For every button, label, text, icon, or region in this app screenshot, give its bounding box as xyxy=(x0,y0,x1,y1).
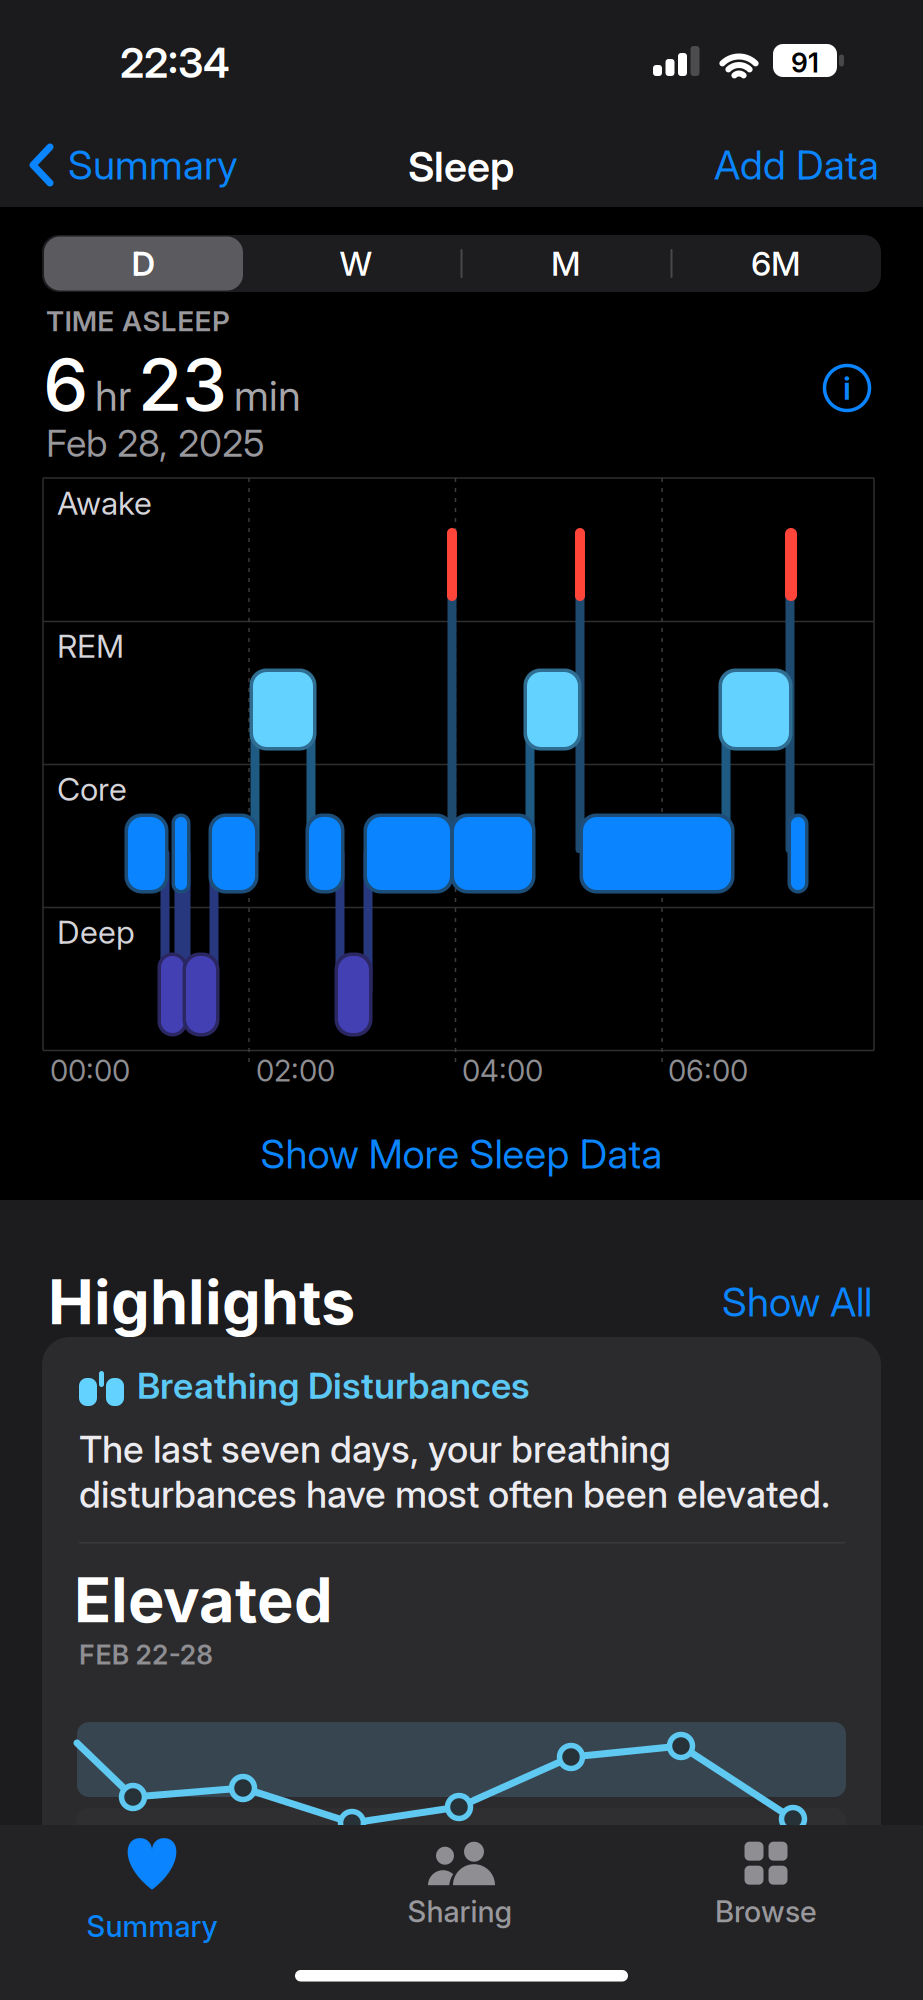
staticText: Deep xyxy=(57,913,135,951)
staticText: W xyxy=(339,244,372,283)
staticText: disturbances have most often been elevat… xyxy=(79,1472,830,1516)
staticText: Add Data xyxy=(714,141,879,189)
staticText: 04:00 xyxy=(462,1053,543,1088)
staticText: Sharing xyxy=(407,1894,512,1929)
staticText: 06:00 xyxy=(668,1053,748,1088)
staticText: Browse xyxy=(715,1894,817,1929)
button[interactable]: D xyxy=(44,236,243,290)
staticText: 02:00 xyxy=(256,1053,335,1088)
staticText: D xyxy=(131,244,155,283)
button[interactable]: Show All xyxy=(652,1274,872,1330)
staticText: Core xyxy=(57,770,127,808)
staticText: Show All xyxy=(722,1278,872,1326)
staticText: The last seven days, your breathing xyxy=(79,1427,671,1471)
staticText: Sleep xyxy=(408,142,514,191)
button[interactable]: Sharing xyxy=(330,1832,590,1938)
staticText: Elevated xyxy=(74,1564,333,1636)
staticText: 00:00 xyxy=(50,1053,130,1088)
staticText: Summary xyxy=(68,141,238,189)
staticText: Highlights xyxy=(48,1266,355,1338)
staticText: Awake xyxy=(57,484,152,522)
staticText: min xyxy=(234,371,301,420)
button[interactable]: 6M xyxy=(671,235,881,292)
staticText: i xyxy=(843,369,851,407)
button[interactable] xyxy=(42,1337,881,1897)
staticText: hr xyxy=(95,371,131,420)
staticText: TIME ASLEEP xyxy=(46,305,230,338)
staticText: Summary xyxy=(86,1909,217,1944)
staticText: 23 xyxy=(138,342,227,427)
staticText: Feb 28, 2025 xyxy=(46,421,265,465)
staticText: M xyxy=(551,244,581,283)
staticText: 6 xyxy=(43,342,88,427)
button[interactable]: M xyxy=(461,235,671,292)
staticText: 22:34 xyxy=(120,38,230,87)
button[interactable]: Summary xyxy=(22,1832,282,1938)
staticText: Show More Sleep Data xyxy=(260,1130,662,1178)
button[interactable]: Browse xyxy=(636,1832,896,1938)
button[interactable]: Show More Sleep Data xyxy=(0,1124,923,1184)
button[interactable]: Summary xyxy=(30,137,370,193)
staticText: 6M xyxy=(751,244,801,283)
staticText: 91 xyxy=(791,47,819,79)
staticText: FEB 22-28 xyxy=(79,1639,213,1671)
button[interactable]: Add Data xyxy=(579,137,879,193)
staticText: REM xyxy=(57,627,124,665)
staticText: Breathing Disturbances xyxy=(137,1364,530,1407)
button[interactable]: W xyxy=(251,235,461,292)
button[interactable]: i xyxy=(820,361,874,415)
